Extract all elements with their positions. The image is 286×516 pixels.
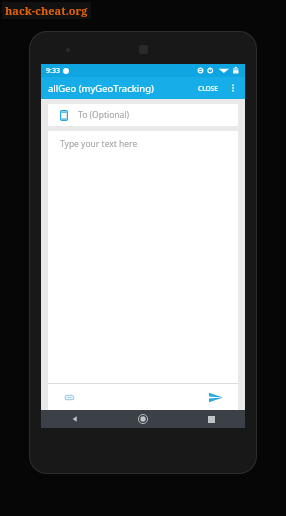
- button[interactable]: Recents: [177, 410, 245, 428]
- button[interactable]: Home: [109, 410, 177, 428]
- staticText: CLOSE: [198, 84, 218, 93]
- staticText: Type your text here: [60, 138, 138, 150]
- staticText: 9:33: [46, 66, 60, 76]
- staticText: To (Optional): [78, 109, 130, 121]
- button[interactable]: Back: [41, 410, 109, 428]
- button[interactable]: Attach: [60, 388, 78, 406]
- button[interactable]: More options: [225, 80, 241, 96]
- button[interactable]: To (Optional): [48, 104, 238, 126]
- button[interactable]: CLOSE: [194, 80, 222, 97]
- staticText: hack-cheat.org: [5, 3, 88, 18]
- button[interactable]: Type your text here: [48, 131, 238, 383]
- staticText: allGeo (myGeoTracking): [48, 82, 154, 95]
- button[interactable]: Send: [206, 387, 226, 407]
